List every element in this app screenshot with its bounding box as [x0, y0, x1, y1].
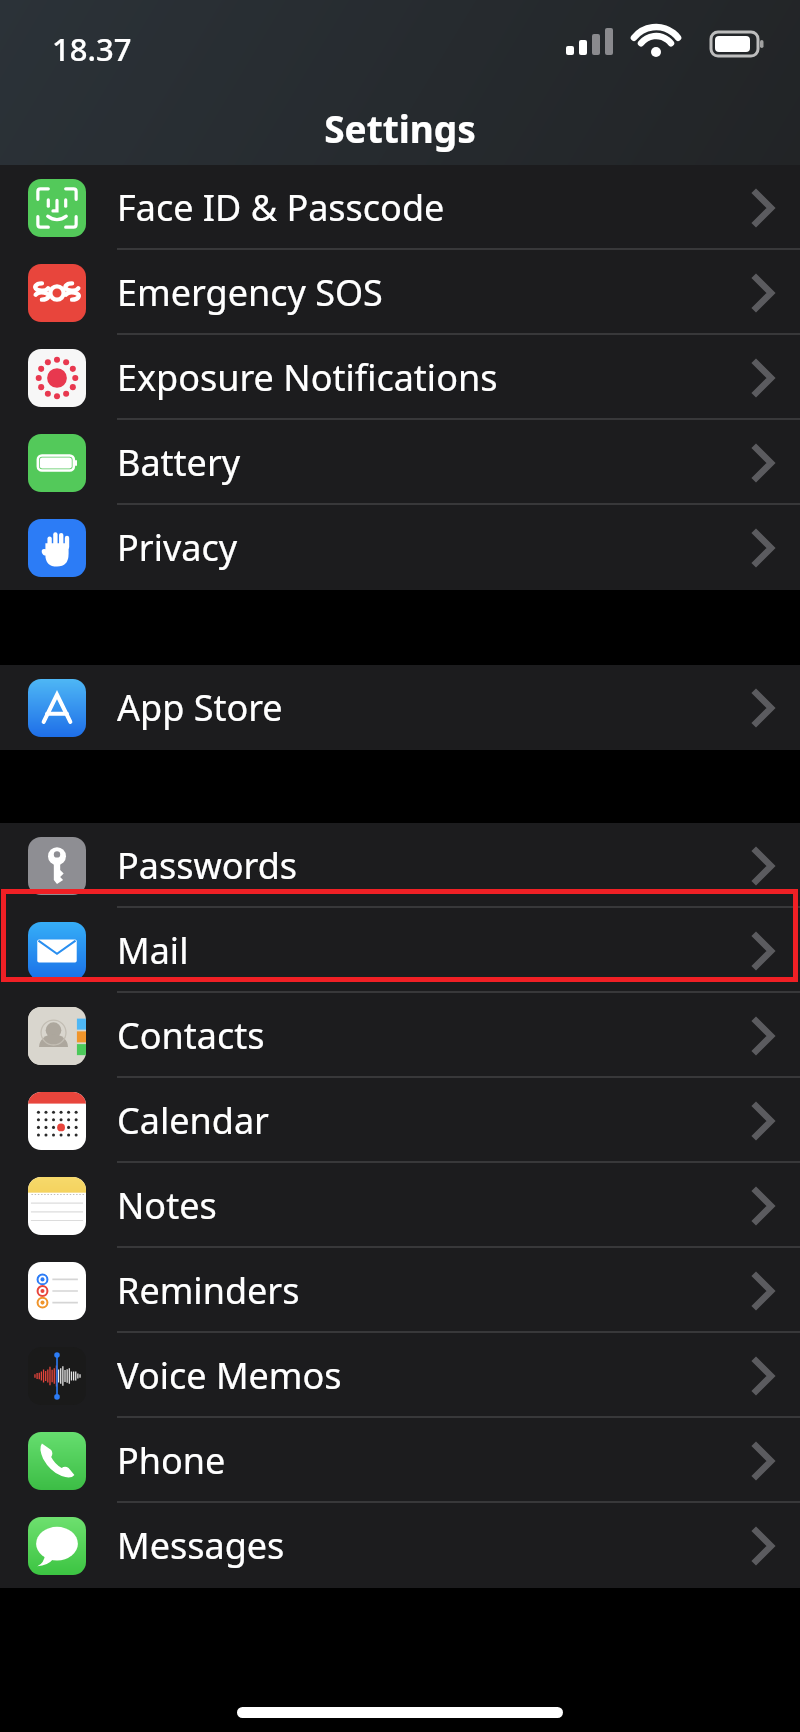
button[interactable]: Reminders: [0, 1248, 800, 1333]
button[interactable]: App Store: [0, 665, 800, 750]
staticText: Mail: [117, 926, 189, 975]
button[interactable]: Battery: [0, 420, 800, 505]
staticText: Calendar: [117, 1096, 269, 1145]
button[interactable]: Face ID & Passcode: [0, 165, 800, 250]
button[interactable]: Notes: [0, 1163, 800, 1248]
staticText: Notes: [117, 1181, 217, 1230]
button[interactable]: Contacts: [0, 993, 800, 1078]
button[interactable]: Phone: [0, 1418, 800, 1503]
button[interactable]: Emergency SOS: [0, 250, 800, 335]
staticText: Emergency SOS: [117, 268, 383, 317]
button[interactable]: Calendar: [0, 1078, 800, 1163]
staticText: Face ID & Passcode: [117, 183, 445, 232]
staticText: Settings: [0, 103, 800, 153]
staticText: Voice Memos: [117, 1351, 342, 1400]
staticText: Passwords: [117, 841, 298, 890]
staticText: Reminders: [117, 1266, 300, 1315]
staticText: Exposure Notifications: [117, 353, 498, 402]
staticText: Battery: [117, 438, 241, 487]
button[interactable]: Messages: [0, 1503, 800, 1588]
button[interactable]: Passwords: [0, 823, 800, 908]
button[interactable]: Privacy: [0, 505, 800, 590]
staticText: App Store: [117, 683, 283, 732]
staticText: Messages: [117, 1521, 285, 1570]
button[interactable]: Voice Memos: [0, 1333, 800, 1418]
button[interactable]: Mail: [0, 908, 800, 993]
staticText: Phone: [117, 1436, 226, 1485]
button[interactable]: Exposure Notifications: [0, 335, 800, 420]
staticText: Privacy: [117, 523, 238, 572]
staticText: Contacts: [117, 1011, 265, 1060]
staticText: 18.37: [52, 28, 132, 70]
